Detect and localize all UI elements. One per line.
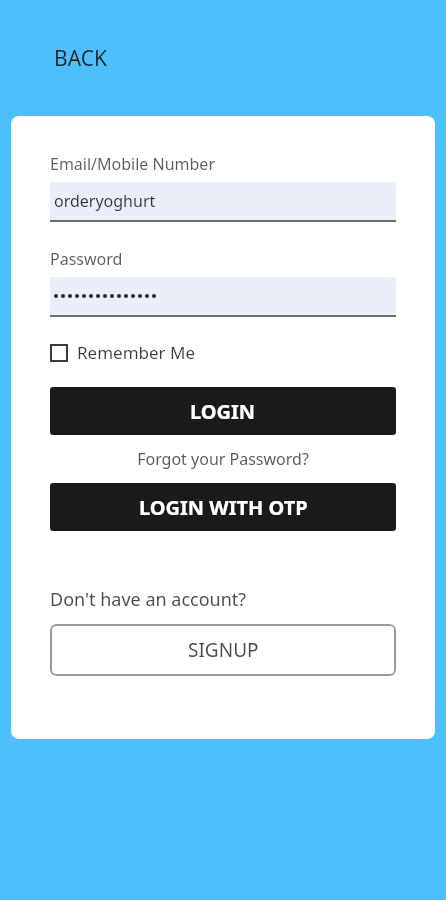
staticText: Password [50, 248, 123, 270]
button[interactable]: Remember Me [50, 339, 196, 366]
staticText: SIGNUP [188, 637, 259, 663]
staticText: orderyoghurt [54, 190, 156, 212]
staticText: Remember Me [77, 341, 196, 364]
staticText: Don't have an account? [50, 587, 247, 612]
button[interactable]: LOGIN WITH OTP [50, 483, 396, 531]
button[interactable]: SIGNUP [50, 624, 396, 676]
staticText: LOGIN [190, 398, 256, 425]
button[interactable]: LOGIN [50, 387, 396, 435]
staticText: Forgot your Password? [137, 448, 309, 470]
staticText: Email/Mobile Number [50, 153, 215, 175]
button[interactable] [50, 277, 396, 317]
staticText: BACK [54, 44, 107, 73]
staticText: LOGIN WITH OTP [139, 494, 308, 521]
button[interactable]: BACK [42, 36, 119, 81]
button[interactable]: Forgot your Password? [50, 446, 396, 472]
button[interactable]: orderyoghurt [50, 182, 396, 222]
